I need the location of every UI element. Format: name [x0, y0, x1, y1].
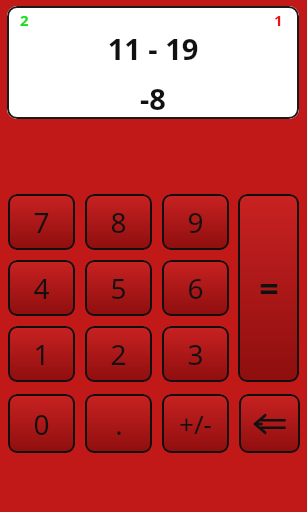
button[interactable]: 2 [85, 326, 152, 382]
button[interactable]: = [238, 194, 299, 382]
staticText: 1 [274, 10, 283, 30]
button[interactable]: 9 [162, 194, 229, 250]
staticText: 5 [110, 269, 127, 307]
button[interactable]: 4 [8, 260, 75, 316]
button[interactable]: 5 [85, 260, 152, 316]
staticText: 3 [187, 335, 204, 373]
button[interactable]: 3 [162, 326, 229, 382]
staticText: 9 [187, 203, 204, 241]
button[interactable]: 0 [8, 394, 75, 453]
button[interactable]: 1 [8, 326, 75, 382]
staticText: 2 [20, 10, 29, 30]
button[interactable]: . [85, 394, 152, 453]
staticText: 7 [33, 203, 50, 241]
staticText: 0 [33, 405, 50, 443]
staticText: 2 [110, 335, 127, 373]
staticText: +/- [179, 406, 212, 441]
staticText: 1 [33, 335, 50, 373]
staticText: . [115, 405, 123, 443]
staticText: = [259, 265, 279, 311]
staticText: 8 [110, 203, 127, 241]
button[interactable]: 8 [85, 194, 152, 250]
staticText: 4 [33, 269, 50, 307]
button[interactable]: +/- [162, 394, 229, 453]
button[interactable]: Backspace [239, 394, 300, 453]
button[interactable]: 6 [162, 260, 229, 316]
button[interactable]: 7 [8, 194, 75, 250]
staticText: -8 [7, 79, 299, 118]
button[interactable]: 2 [7, 6, 299, 119]
staticText: 11 - 19 [7, 29, 299, 68]
staticText: 6 [187, 269, 204, 307]
